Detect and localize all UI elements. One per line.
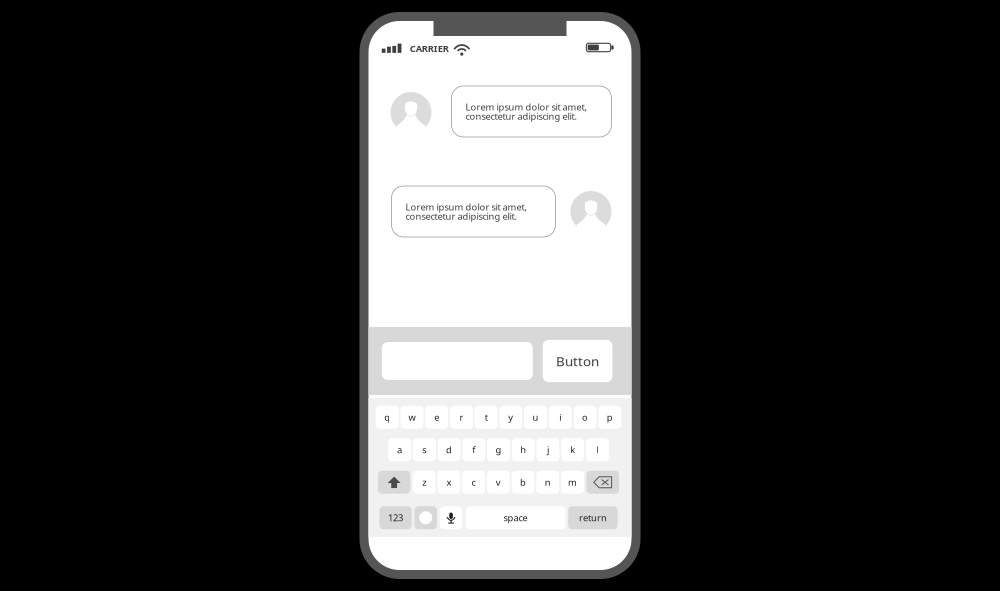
staticText: n bbox=[545, 476, 551, 488]
staticText: consectetur adipiscing elit. bbox=[465, 110, 577, 122]
staticText: 123 bbox=[388, 512, 403, 524]
staticText: CARRIER bbox=[410, 42, 449, 55]
staticText: k bbox=[570, 444, 575, 456]
staticText: q bbox=[384, 411, 390, 423]
button[interactable]: e bbox=[425, 406, 448, 429]
staticText: r bbox=[459, 411, 463, 423]
button[interactable]: h bbox=[512, 438, 535, 461]
button[interactable]: b bbox=[512, 471, 535, 494]
staticText: y bbox=[508, 411, 513, 423]
staticText: return bbox=[579, 512, 607, 524]
staticText: u bbox=[533, 411, 539, 423]
staticText: f bbox=[472, 444, 475, 456]
staticText: Lorem ipsum dolor sit amet, bbox=[405, 201, 527, 213]
button[interactable]: r bbox=[450, 406, 473, 429]
button[interactable]: m bbox=[561, 471, 584, 494]
button[interactable]: j bbox=[536, 438, 559, 461]
button[interactable]: x bbox=[437, 471, 460, 494]
button[interactable]: d bbox=[438, 438, 461, 461]
button[interactable]: Button bbox=[543, 340, 612, 382]
button[interactable]: t bbox=[475, 406, 498, 429]
button[interactable]: Dictation bbox=[440, 506, 462, 529]
staticText: i bbox=[559, 411, 561, 423]
staticText: o bbox=[582, 411, 588, 423]
button[interactable]: q bbox=[376, 406, 399, 429]
staticText: w bbox=[408, 411, 415, 423]
staticText: d bbox=[446, 444, 452, 456]
button[interactable]: g bbox=[487, 438, 510, 461]
button[interactable]: i bbox=[549, 406, 572, 429]
staticText: x bbox=[446, 476, 451, 488]
button[interactable]: Delete bbox=[586, 471, 619, 494]
staticText: g bbox=[495, 444, 501, 456]
staticText: l bbox=[596, 444, 598, 456]
staticText: space bbox=[504, 512, 528, 524]
button[interactable]: u bbox=[524, 406, 547, 429]
staticText: Button bbox=[556, 352, 599, 370]
staticText: t bbox=[485, 411, 488, 423]
button[interactable]: y bbox=[499, 406, 522, 429]
staticText: b bbox=[520, 476, 526, 488]
button[interactable]: a bbox=[388, 438, 411, 461]
staticText: j bbox=[547, 444, 549, 456]
staticText: m bbox=[568, 476, 577, 488]
button[interactable]: v bbox=[487, 471, 510, 494]
button[interactable]: s bbox=[413, 438, 436, 461]
button[interactable]: return bbox=[568, 506, 618, 529]
button[interactable]: 123 bbox=[379, 506, 412, 529]
button[interactable]: f bbox=[462, 438, 485, 461]
staticText: v bbox=[496, 476, 501, 488]
button[interactable]: k bbox=[561, 438, 584, 461]
button[interactable]: o bbox=[573, 406, 596, 429]
staticText: a bbox=[397, 444, 402, 456]
button[interactable]: z bbox=[413, 471, 436, 494]
button[interactable]: n bbox=[536, 471, 559, 494]
button[interactable]: p bbox=[598, 406, 621, 429]
staticText: z bbox=[422, 476, 426, 488]
button[interactable]: l bbox=[586, 438, 609, 461]
staticText: consectetur adipiscing elit. bbox=[405, 210, 517, 222]
button[interactable]: space bbox=[466, 506, 565, 529]
staticText: h bbox=[520, 444, 526, 456]
button[interactable]: w bbox=[400, 406, 423, 429]
staticText: p bbox=[607, 411, 613, 423]
button[interactable]: c bbox=[462, 471, 485, 494]
button[interactable]: Shift bbox=[378, 471, 410, 494]
button[interactable]: Emoji bbox=[414, 506, 437, 529]
staticText: s bbox=[422, 444, 426, 456]
staticText: e bbox=[434, 411, 439, 423]
staticText: c bbox=[472, 476, 476, 488]
staticText: Lorem ipsum dolor sit amet, bbox=[465, 101, 587, 113]
